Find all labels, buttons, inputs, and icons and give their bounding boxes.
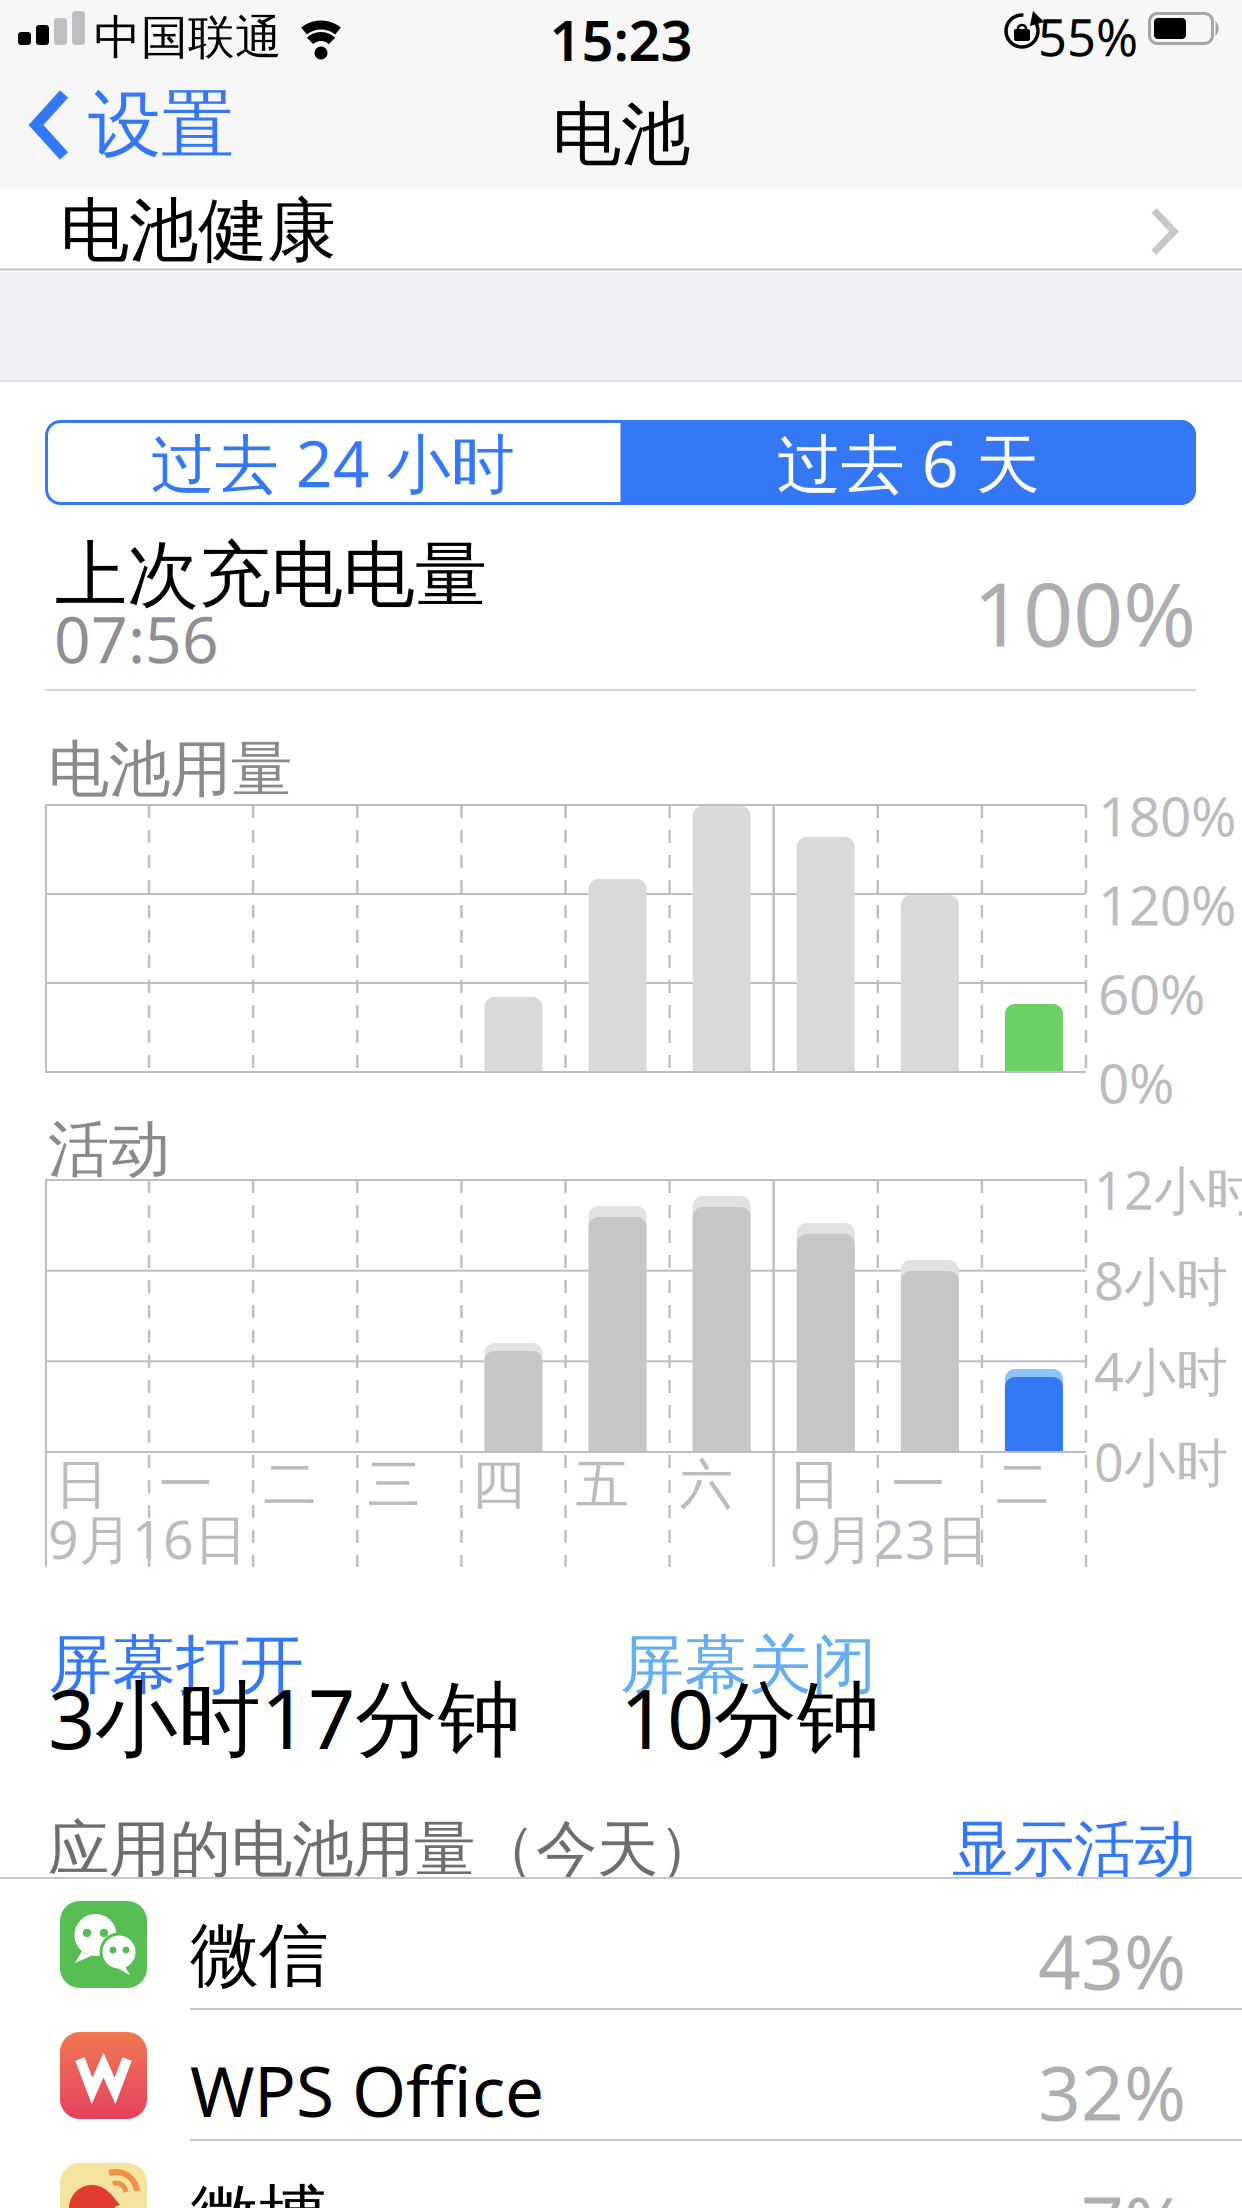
- staticText: 过去 6 天: [777, 420, 1040, 505]
- staticText: 180%: [1098, 779, 1236, 852]
- staticText: 微博: [190, 2175, 328, 2208]
- staticText: 32%: [1038, 2042, 1186, 2141]
- staticText: 日: [55, 1452, 108, 1517]
- button[interactable]: WPS Office: [0, 2010, 1242, 2141]
- staticText: 中国联通: [94, 9, 282, 66]
- button[interactable]: 过去 6 天: [620, 420, 1196, 505]
- staticText: 微信: [190, 1913, 328, 1998]
- staticText: 15:23: [549, 2, 692, 76]
- staticText: 60%: [1098, 957, 1205, 1030]
- button[interactable]: 微信: [0, 1879, 1242, 2010]
- staticText: 日: [788, 1452, 841, 1517]
- button[interactable]: 设置: [30, 60, 234, 190]
- staticText: 9月16日: [48, 1503, 247, 1574]
- staticText: 六: [680, 1452, 733, 1517]
- staticText: 电池健康: [60, 188, 336, 274]
- staticText: 二: [996, 1452, 1049, 1517]
- staticText: 活动: [48, 1112, 170, 1187]
- staticText: 一: [159, 1452, 212, 1517]
- button[interactable]: 电池健康: [0, 190, 1242, 272]
- staticText: 设置: [88, 80, 234, 170]
- staticText: 43%: [1038, 1911, 1186, 2010]
- staticText: 四: [471, 1452, 524, 1517]
- staticText: 12小时: [1094, 1155, 1242, 1224]
- staticText: 三: [367, 1452, 420, 1517]
- staticText: 电池用量: [48, 732, 292, 807]
- staticText: 8小时: [1094, 1246, 1228, 1315]
- button[interactable]: 过去 24 小时: [45, 420, 620, 505]
- staticText: 显示活动: [952, 1812, 1196, 1887]
- staticText: 10分钟: [620, 1662, 880, 1772]
- staticText: 4小时: [1094, 1336, 1228, 1405]
- staticText: 电池: [552, 92, 690, 177]
- staticText: 0%: [1098, 1046, 1174, 1119]
- staticText: 二: [263, 1452, 316, 1517]
- staticText: 100%: [973, 554, 1196, 671]
- staticText: 120%: [1098, 868, 1236, 941]
- staticText: 应用的电池用量（今天）: [48, 1812, 719, 1887]
- staticText: 0小时: [1094, 1427, 1228, 1496]
- button[interactable]: 微博: [0, 2141, 1242, 2208]
- staticText: 7%: [1081, 2173, 1186, 2208]
- button[interactable]: 显示活动: [896, 1812, 1196, 1887]
- staticText: 一: [892, 1452, 945, 1517]
- staticText: 55%: [1038, 3, 1138, 70]
- staticText: 3小时17分钟: [48, 1662, 521, 1772]
- staticText: 屏幕关闭: [620, 1626, 876, 1705]
- staticText: 9月23日: [790, 1503, 989, 1574]
- staticText: WPS Office: [190, 2044, 544, 2136]
- staticText: 过去 24 小时: [151, 420, 515, 505]
- staticText: 上次充电电量: [55, 531, 487, 619]
- staticText: 07:56: [54, 596, 219, 681]
- staticText: 屏幕打开: [48, 1626, 304, 1705]
- staticText: 五: [575, 1452, 628, 1517]
